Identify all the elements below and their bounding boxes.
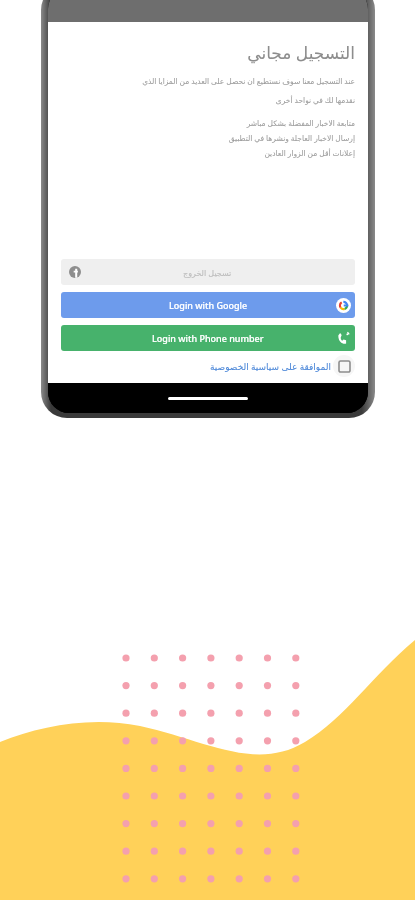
staticText: الموافقة على سياسية الخصوصية xyxy=(210,360,331,372)
staticText: متابعة الاخبار المفضلة بشكل مباشر إرسال … xyxy=(61,118,355,158)
button[interactable]: Login with Google xyxy=(61,292,355,318)
button[interactable]: الموافقة على سياسية الخصوصية xyxy=(208,357,333,375)
button[interactable]: Login with Phone number xyxy=(61,325,355,351)
staticText: Login with Google xyxy=(169,299,248,311)
button[interactable]: Agree to privacy policy checkbox xyxy=(333,355,355,377)
staticText: Login with Phone number xyxy=(152,332,264,344)
staticText: تسجيل الخروج xyxy=(183,267,232,278)
staticText: عند التسجيل معنا سوف نستطيع ان نحصل على … xyxy=(61,76,355,105)
button[interactable]: تسجيل الخروج xyxy=(61,259,355,285)
staticText: التسجيل مجاني xyxy=(61,41,355,64)
